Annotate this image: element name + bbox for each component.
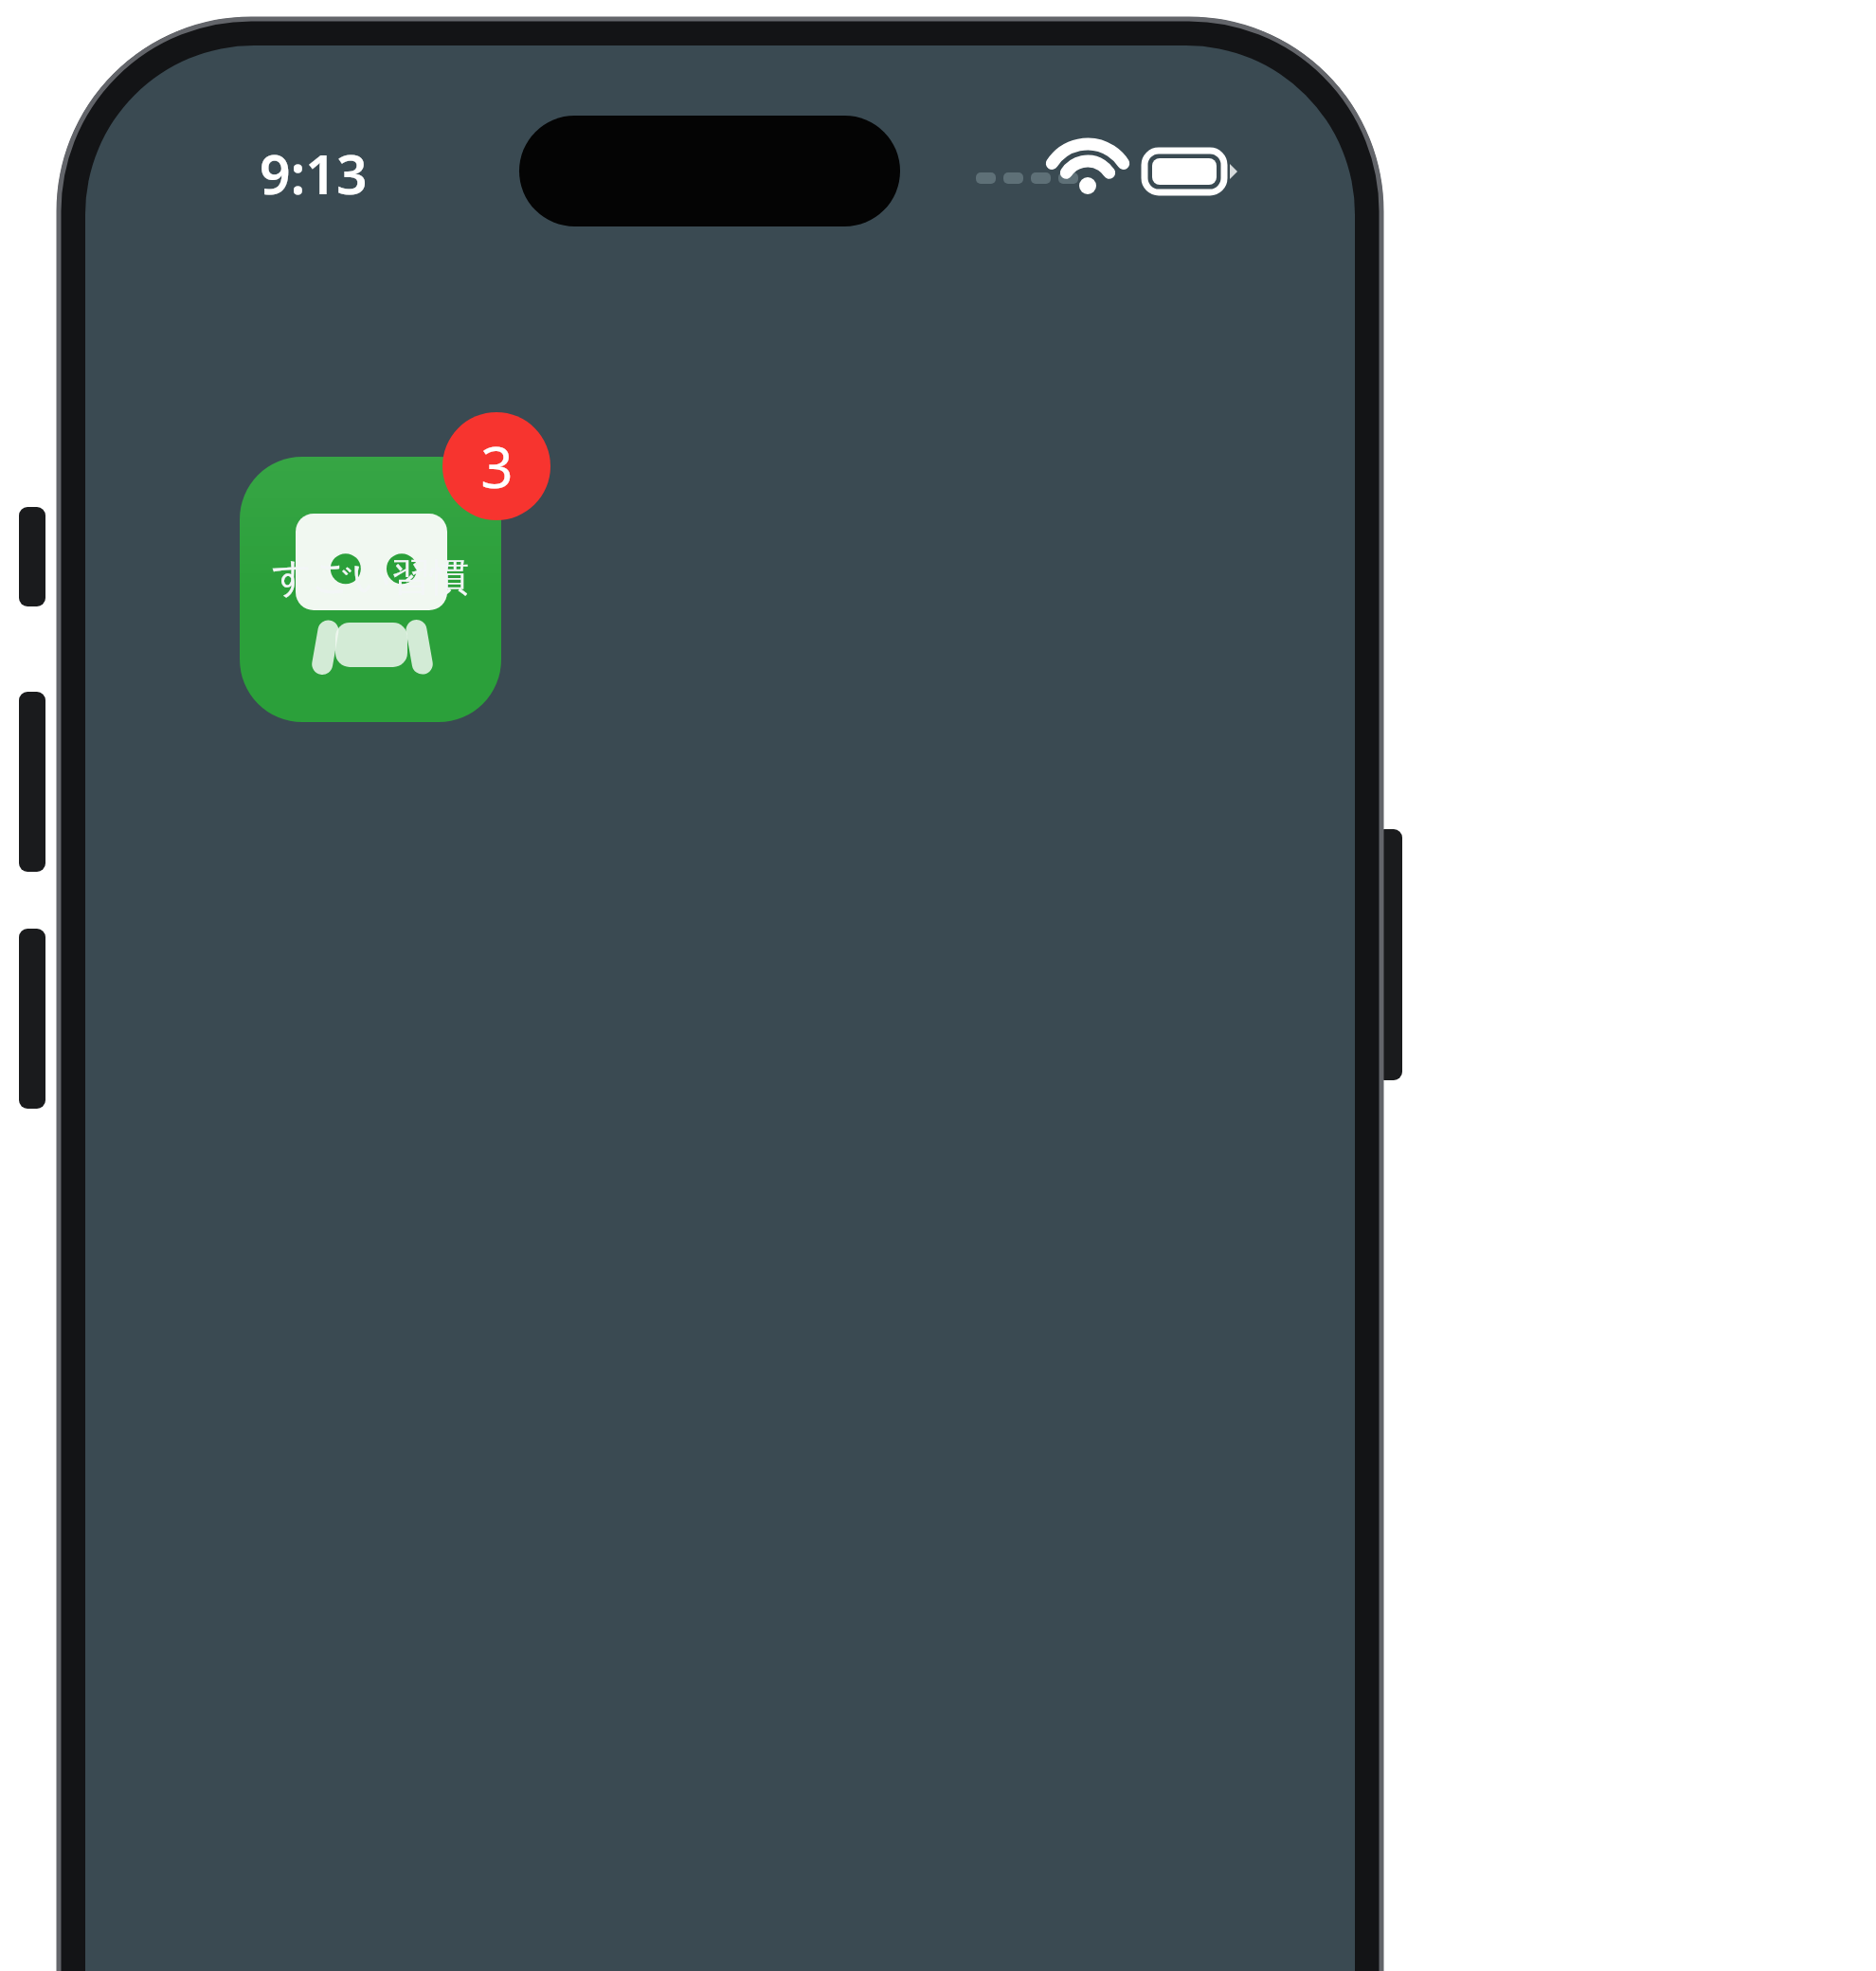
staticText: 9:13 <box>260 136 368 210</box>
staticText: 3 <box>480 427 514 505</box>
button[interactable]: すごい習慣 app <box>240 457 499 724</box>
staticText: すごい習慣 <box>272 553 469 603</box>
